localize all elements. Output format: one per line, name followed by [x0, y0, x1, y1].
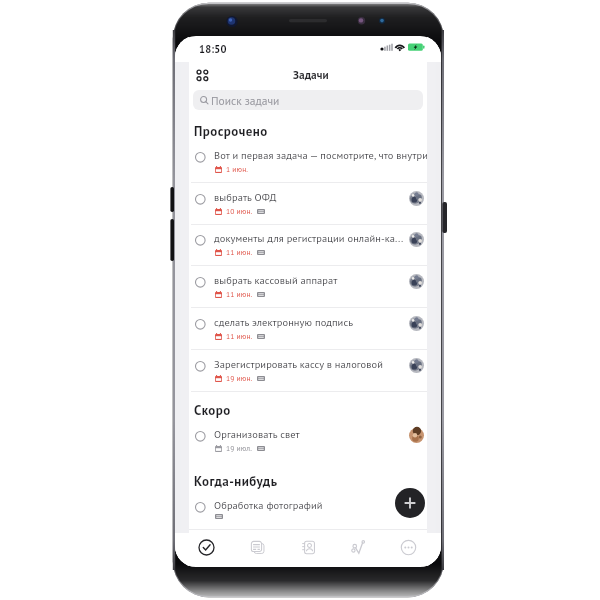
staticText: Вот и первая задача — посмотрите, что вн…: [214, 148, 430, 161]
button[interactable]: Add task: [395, 488, 425, 518]
staticText: 11 июн.: [226, 289, 253, 299]
staticText: 19 июл.: [226, 443, 253, 453]
staticText: 1 июн.: [226, 164, 249, 174]
button[interactable]: Tasks: [181, 530, 231, 566]
staticText: сделать электронную подпись: [214, 315, 430, 328]
button[interactable]: Contacts: [283, 530, 333, 566]
button[interactable]: Menu: [195, 68, 210, 83]
staticText: 11 июн.: [226, 247, 253, 257]
staticText: Просрочено: [194, 123, 268, 140]
button[interactable]: сделать электронную подпись: [175, 308, 441, 350]
staticText: 18:50: [199, 42, 227, 56]
button[interactable]: Обработка фотографий: [175, 491, 441, 533]
staticText: Организовать свет: [214, 427, 430, 440]
button[interactable]: Зарегистрировать кассу в налоговой: [175, 350, 441, 392]
staticText: 11 июн.: [226, 331, 253, 341]
staticText: 19 июн.: [226, 373, 253, 383]
button[interactable]: Analytics: [333, 530, 383, 566]
button[interactable]: Documents: [232, 530, 282, 566]
staticText: выбрать ОФД: [214, 190, 430, 203]
button[interactable]: Поиск задачи: [193, 90, 423, 110]
button[interactable]: выбрать кассовый аппарат: [175, 266, 441, 308]
button[interactable]: More: [383, 530, 433, 566]
staticText: документы для регистрации онлайн-ка...: [214, 231, 430, 244]
staticText: Обработка фотографий: [214, 498, 430, 511]
button[interactable]: выбрать ОФД: [175, 183, 441, 225]
button[interactable]: Организовать свет: [175, 420, 441, 462]
staticText: 10 июн.: [226, 206, 253, 216]
button[interactable]: Вот и первая задача — посмотрите, что вн…: [175, 141, 441, 183]
button[interactable]: документы для регистрации онлайн-ка...: [175, 224, 441, 266]
staticText: выбрать кассовый аппарат: [214, 273, 430, 286]
staticText: Задачи: [293, 68, 329, 82]
staticText: Зарегистрировать кассу в налоговой: [214, 357, 430, 370]
staticText: Скоро: [194, 402, 231, 419]
staticText: Поиск задачи: [211, 93, 280, 108]
staticText: Когда-нибудь: [194, 473, 278, 490]
